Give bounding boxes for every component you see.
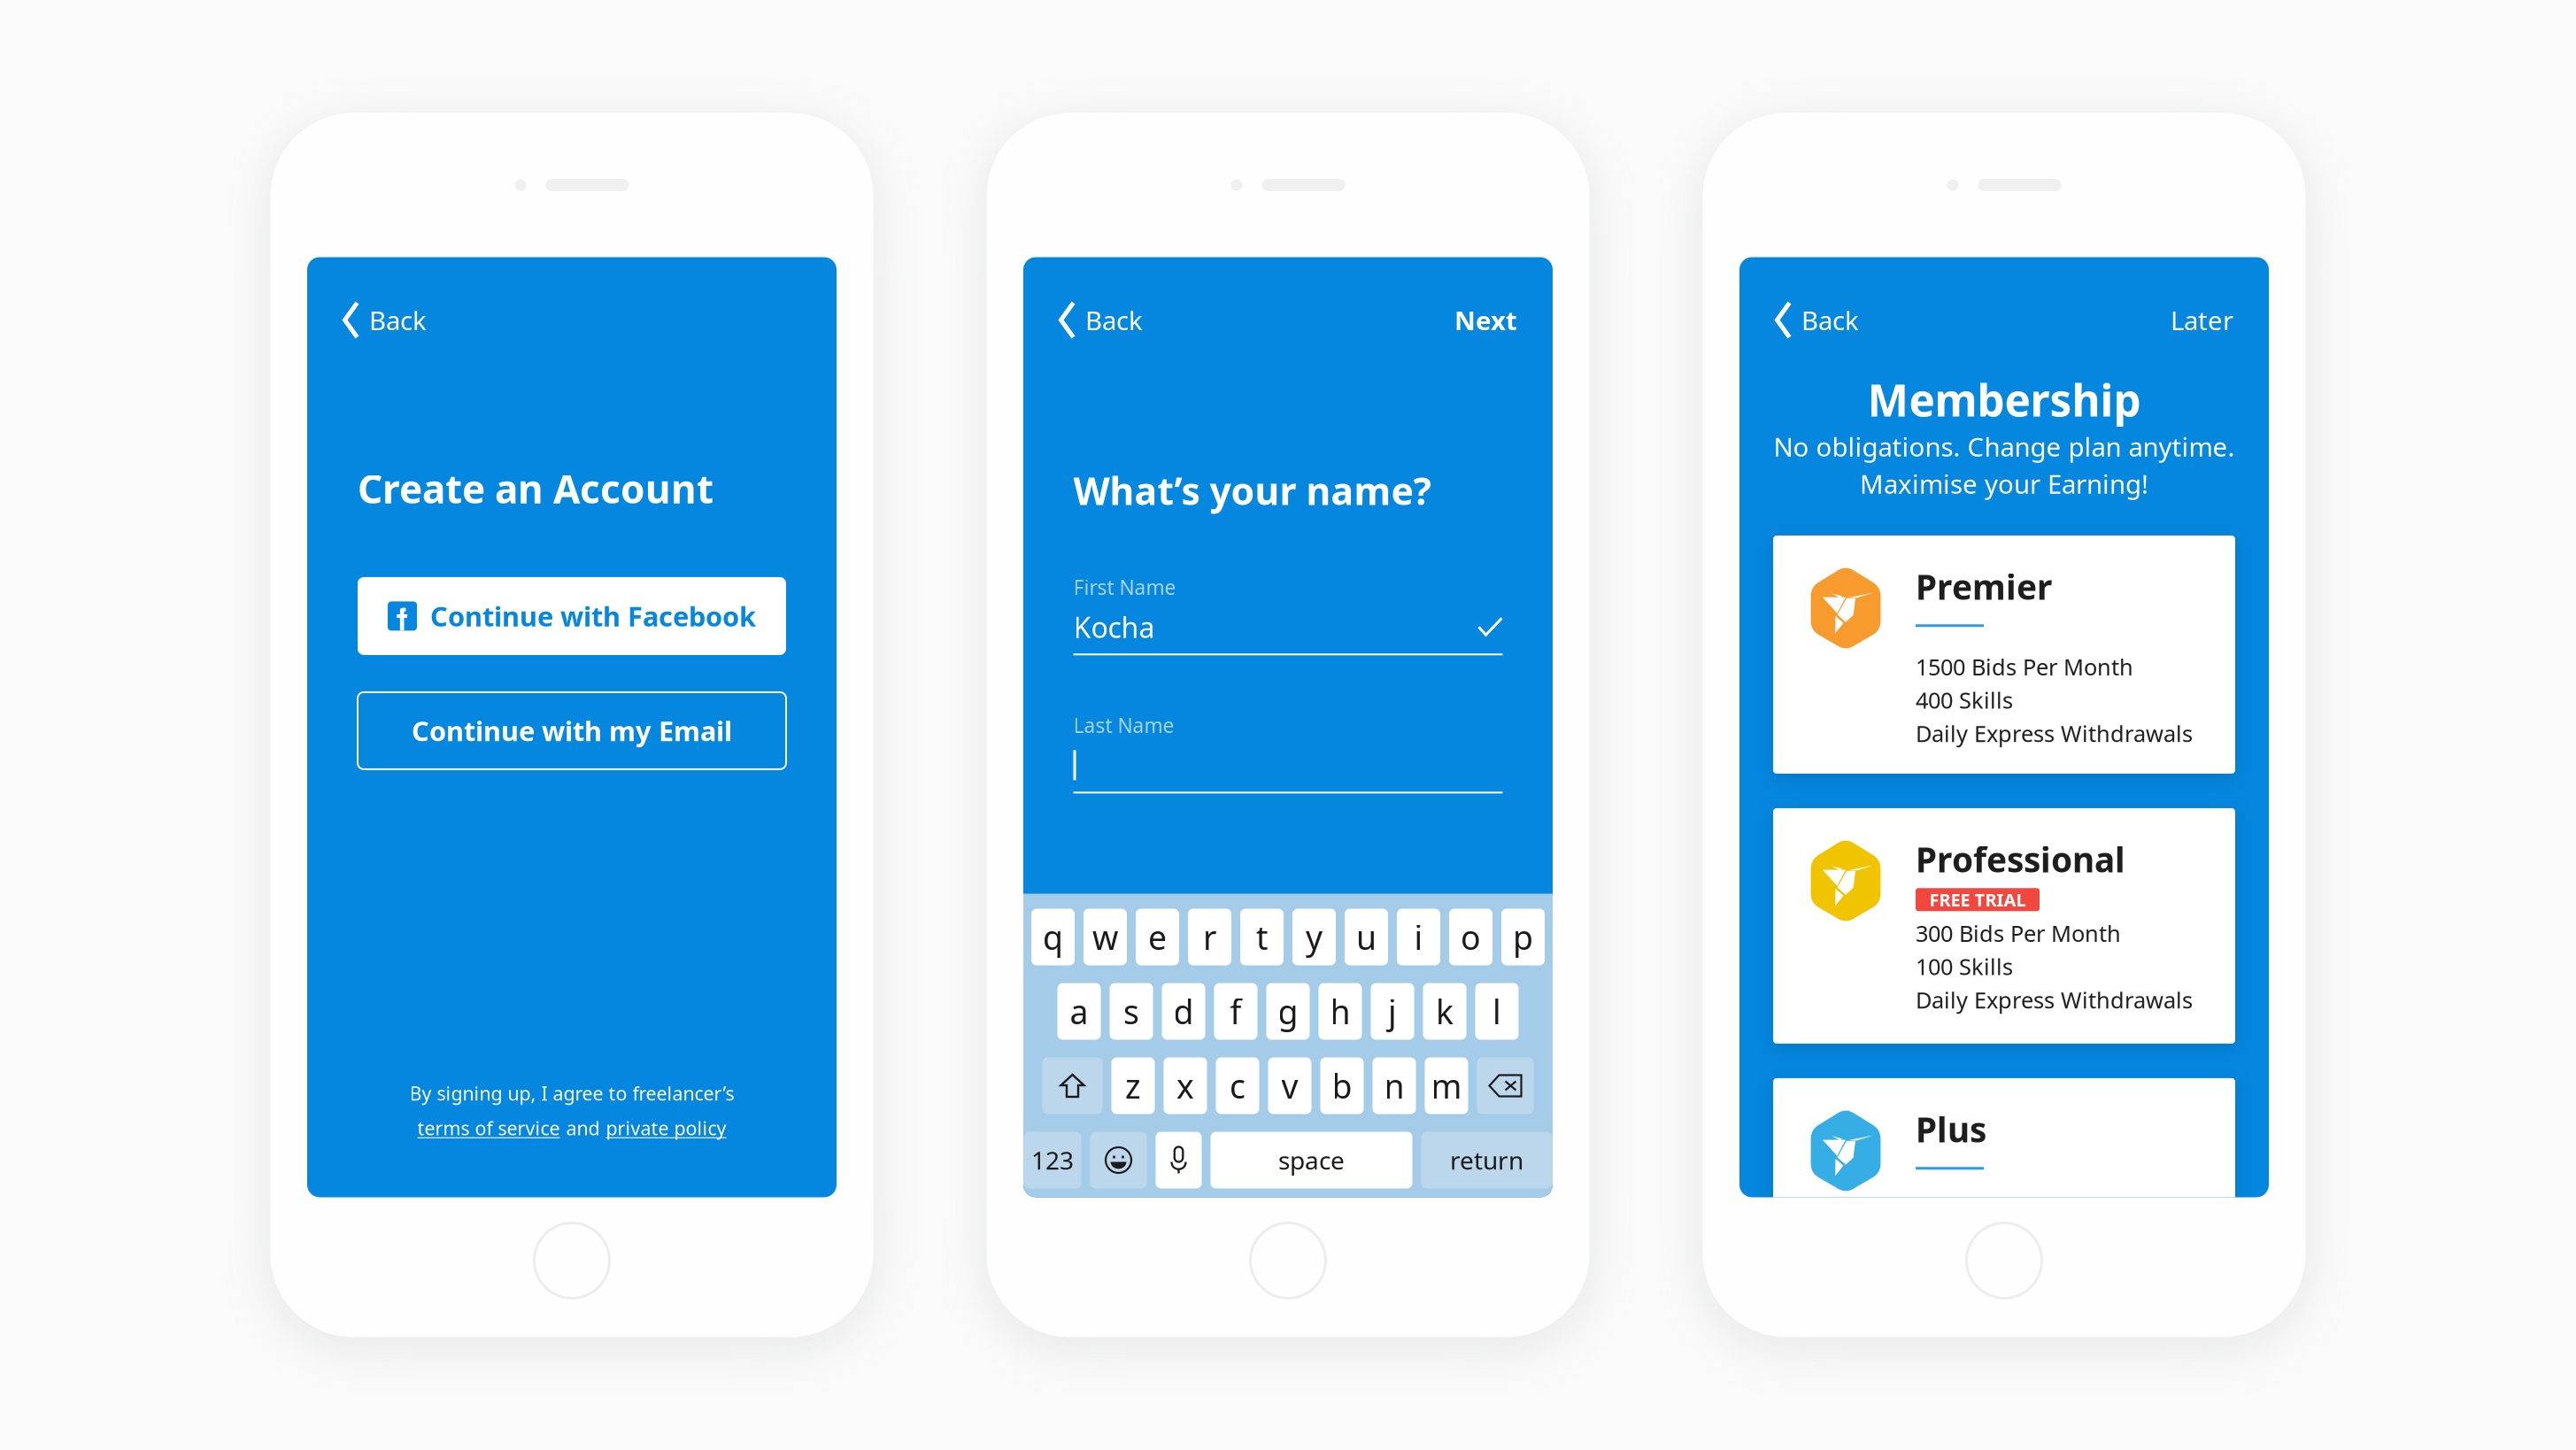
staticText: d bbox=[1173, 989, 1194, 1033]
staticText: Premier bbox=[1916, 564, 2052, 609]
button[interactable]: b bbox=[1320, 1057, 1364, 1114]
staticText: Back bbox=[369, 303, 427, 337]
staticText: 1500 Bids Per Month bbox=[1916, 652, 2133, 682]
staticText: w bbox=[1092, 915, 1118, 959]
button[interactable]: Next bbox=[1454, 303, 1517, 337]
staticText: p bbox=[1513, 915, 1533, 959]
staticText: First Name bbox=[1073, 574, 1176, 600]
staticText: t bbox=[1256, 915, 1268, 959]
staticText: Daily Express Withdrawals bbox=[1916, 718, 2193, 748]
staticText: Last Name bbox=[1073, 712, 1174, 739]
button[interactable]: y bbox=[1292, 909, 1336, 965]
staticText: c bbox=[1230, 1064, 1246, 1108]
staticText: e bbox=[1148, 915, 1167, 959]
staticText: Professional bbox=[1916, 836, 2125, 882]
button[interactable]: Shift bbox=[1042, 1057, 1103, 1114]
staticText: g bbox=[1278, 989, 1298, 1033]
button[interactable]: p bbox=[1501, 909, 1545, 965]
button[interactable]: Back bbox=[1059, 301, 1143, 339]
button[interactable]: Later bbox=[2171, 303, 2233, 337]
staticText: Create an Account bbox=[358, 463, 713, 514]
staticText: Back bbox=[1801, 303, 1859, 337]
button[interactable]: l bbox=[1475, 983, 1519, 1040]
button[interactable]: m bbox=[1425, 1057, 1468, 1114]
button[interactable]: x bbox=[1164, 1057, 1207, 1114]
staticText: Maximise your Earning! bbox=[1860, 467, 2148, 501]
staticText: f bbox=[1230, 989, 1242, 1033]
button[interactable]: Continue with my Email bbox=[358, 692, 786, 769]
staticText: Continue with my Email bbox=[412, 713, 732, 749]
staticText: Plus bbox=[1916, 1106, 1986, 1152]
button[interactable]: o bbox=[1449, 909, 1492, 965]
staticText: h bbox=[1330, 989, 1350, 1033]
staticText: q bbox=[1043, 915, 1063, 959]
staticText: Later bbox=[2171, 303, 2233, 337]
button[interactable]: Plus bbox=[1773, 1078, 2235, 1316]
button[interactable]: u bbox=[1345, 909, 1388, 965]
button[interactable]: Back bbox=[343, 301, 427, 339]
staticText: Continue with Facebook bbox=[430, 598, 756, 634]
staticText: o bbox=[1461, 915, 1481, 959]
staticText: No obligations. Change plan anytime. bbox=[1774, 429, 2235, 464]
button[interactable]: Emoji bbox=[1090, 1132, 1147, 1188]
button[interactable]: z bbox=[1111, 1057, 1155, 1114]
staticText: m bbox=[1431, 1064, 1462, 1108]
staticText: v bbox=[1281, 1064, 1298, 1108]
button[interactable]: space bbox=[1211, 1132, 1412, 1188]
button[interactable]: q bbox=[1031, 909, 1075, 965]
staticText: 123 bbox=[1031, 1144, 1074, 1177]
staticText: k bbox=[1436, 989, 1454, 1033]
staticText: 300 Bids Per Month bbox=[1916, 918, 2121, 948]
button[interactable]: a bbox=[1057, 983, 1101, 1040]
staticText: By signing up, I agree to freelancer’s bbox=[409, 1081, 734, 1106]
button[interactable]: return bbox=[1421, 1132, 1552, 1188]
staticText: Kocha bbox=[1073, 608, 1155, 646]
button[interactable]: t bbox=[1240, 909, 1284, 965]
staticText: a bbox=[1070, 989, 1088, 1033]
button[interactable]: j bbox=[1371, 983, 1414, 1040]
staticText: z bbox=[1125, 1064, 1141, 1108]
staticText: return bbox=[1450, 1144, 1523, 1177]
staticText: and bbox=[566, 1116, 600, 1141]
staticText: Next bbox=[1454, 303, 1517, 337]
button[interactable]: d bbox=[1162, 983, 1205, 1040]
staticText: space bbox=[1278, 1144, 1345, 1177]
button[interactable]: h bbox=[1319, 983, 1362, 1040]
staticText: b bbox=[1332, 1064, 1352, 1108]
staticText: i bbox=[1414, 915, 1423, 959]
button[interactable]: r bbox=[1188, 909, 1231, 965]
staticText: r bbox=[1203, 915, 1216, 959]
staticText: Back bbox=[1085, 303, 1143, 337]
button[interactable]: s bbox=[1110, 983, 1153, 1040]
button[interactable]: w bbox=[1084, 909, 1127, 965]
button[interactable]: v bbox=[1268, 1057, 1311, 1114]
staticText: terms of service bbox=[417, 1116, 560, 1141]
button[interactable]: private policy bbox=[606, 1116, 726, 1141]
staticText: l bbox=[1492, 989, 1501, 1033]
button[interactable]: n bbox=[1373, 1057, 1416, 1114]
button[interactable]: Backspace bbox=[1477, 1057, 1534, 1114]
button[interactable]: i bbox=[1397, 909, 1440, 965]
staticText: 100 Skills bbox=[1916, 952, 2013, 981]
button[interactable]: k bbox=[1423, 983, 1466, 1040]
button[interactable]: Dictate bbox=[1156, 1132, 1202, 1188]
button[interactable]: Professional bbox=[1773, 808, 2235, 1044]
button[interactable]: e bbox=[1136, 909, 1179, 965]
staticText: 400 Skills bbox=[1916, 685, 2013, 715]
staticText: private policy bbox=[606, 1116, 726, 1141]
staticText: y bbox=[1306, 915, 1323, 959]
button[interactable]: Continue with Facebook bbox=[358, 577, 786, 655]
button[interactable]: f bbox=[1214, 983, 1257, 1040]
button[interactable]: 123 bbox=[1024, 1132, 1081, 1188]
staticText: s bbox=[1123, 989, 1139, 1033]
staticText: FREE TRIAL bbox=[1929, 888, 2026, 911]
button[interactable]: g bbox=[1266, 983, 1310, 1040]
staticText: u bbox=[1356, 915, 1377, 959]
staticText: j bbox=[1388, 989, 1397, 1033]
button[interactable]: Back bbox=[1775, 301, 1859, 339]
button[interactable]: c bbox=[1216, 1057, 1259, 1114]
button[interactable]: Premier bbox=[1773, 535, 2235, 774]
button[interactable]: terms of service bbox=[417, 1116, 560, 1141]
staticText: n bbox=[1384, 1064, 1404, 1108]
staticText: Daily Express Withdrawals bbox=[1916, 985, 2193, 1015]
